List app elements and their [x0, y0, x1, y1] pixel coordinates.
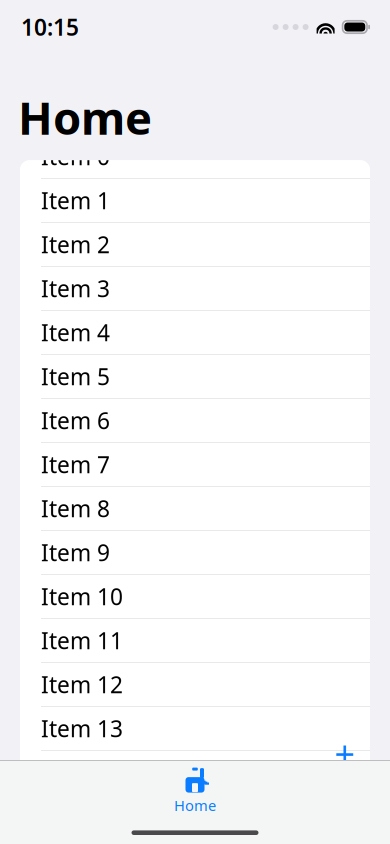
staticText: Item 0 [41, 141, 110, 171]
button[interactable]: Item 9 [20, 531, 370, 575]
button[interactable]: Item 4 [20, 311, 370, 355]
button[interactable]: Item 1 [20, 179, 370, 223]
button[interactable]: Item 14 [20, 751, 370, 795]
staticText: Item 8 [41, 493, 110, 523]
staticText: Home [18, 87, 152, 147]
staticText: Item 1 [41, 185, 110, 215]
button[interactable]: Item 7 [20, 443, 370, 487]
button[interactable]: Item 5 [20, 355, 370, 399]
staticText: Item 2 [41, 229, 110, 259]
staticText: Item 12 [41, 669, 123, 699]
button[interactable]: Add item [326, 734, 364, 772]
staticText: Item 13 [41, 713, 123, 743]
button[interactable]: Item 11 [20, 619, 370, 663]
button[interactable]: Item 10 [20, 575, 370, 619]
staticText: Home [174, 796, 216, 815]
staticText: Item 6 [41, 405, 110, 435]
button[interactable]: Item 12 [20, 663, 370, 707]
staticText: Item 7 [41, 449, 110, 479]
button[interactable]: Item 2 [20, 223, 370, 267]
staticText: Item 11 [41, 625, 123, 655]
staticText: + [334, 729, 355, 777]
button[interactable]: Item 3 [20, 267, 370, 311]
button[interactable]: Item 0 [20, 135, 370, 179]
button[interactable]: Item 6 [20, 399, 370, 443]
staticText: 10:15 [21, 12, 79, 42]
staticText: Item 5 [41, 361, 110, 391]
button[interactable]: Item 13 [20, 707, 370, 751]
staticText: Item 4 [41, 317, 110, 347]
staticText: Item 3 [41, 273, 110, 303]
staticText: Item 14 [41, 757, 123, 787]
button[interactable]: Home [150, 767, 240, 815]
staticText: Item 10 [41, 581, 123, 611]
button[interactable]: Item 8 [20, 487, 370, 531]
staticText: Item 9 [41, 537, 110, 567]
